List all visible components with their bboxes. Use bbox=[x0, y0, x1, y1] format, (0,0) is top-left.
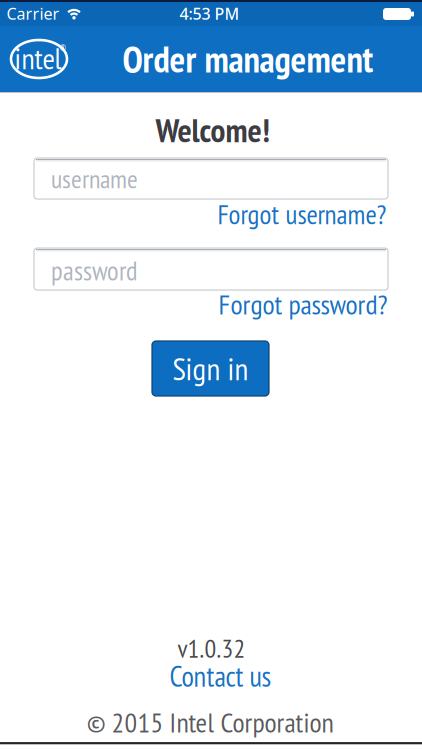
staticText: username bbox=[51, 162, 138, 195]
staticText: password bbox=[51, 253, 138, 288]
staticText: ® bbox=[59, 43, 66, 53]
staticText: Welcome! bbox=[155, 108, 269, 151]
button[interactable]: Contact us bbox=[169, 657, 271, 695]
staticText: Forgot username? bbox=[217, 196, 386, 232]
staticText: Forgot password? bbox=[218, 286, 387, 322]
staticText: intel bbox=[14, 39, 61, 77]
button[interactable]: Forgot username? bbox=[217, 196, 386, 232]
button[interactable]: password bbox=[34, 248, 388, 290]
button[interactable]: Sign in bbox=[152, 341, 269, 396]
button[interactable]: Forgot password? bbox=[218, 286, 387, 322]
button[interactable]: username bbox=[34, 158, 388, 199]
staticText: Sign in bbox=[172, 348, 248, 389]
staticText: v1.0.32 bbox=[177, 631, 245, 665]
staticText: Carrier bbox=[6, 3, 59, 24]
staticText: © 2015 Intel Corporation bbox=[86, 704, 333, 740]
staticText: Order management bbox=[122, 35, 373, 83]
staticText: 4:53 PM bbox=[179, 3, 239, 24]
staticText: Contact us bbox=[169, 657, 271, 695]
